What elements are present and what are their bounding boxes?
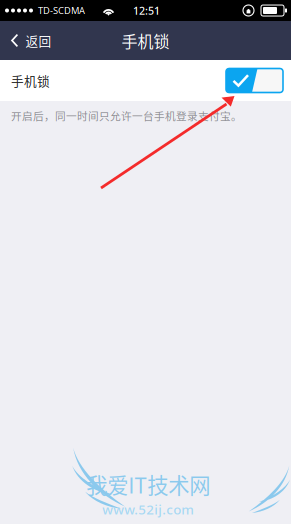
staticText: 开启后，同一时间只允许一台手机登录支付宝。: [11, 108, 242, 123]
staticText: 12:51: [133, 3, 160, 18]
button[interactable]: 手机锁: [0, 60, 291, 101]
staticText: www.52ij.com: [102, 501, 194, 518]
staticText: TD-SCDMA: [38, 4, 85, 17]
staticText: 返回: [25, 31, 51, 50]
staticText: 手机锁: [11, 71, 50, 90]
button[interactable]: 返回: [0, 22, 61, 59]
staticText: 手机锁: [121, 29, 169, 52]
staticText: 我爱IT技术网: [86, 469, 210, 500]
